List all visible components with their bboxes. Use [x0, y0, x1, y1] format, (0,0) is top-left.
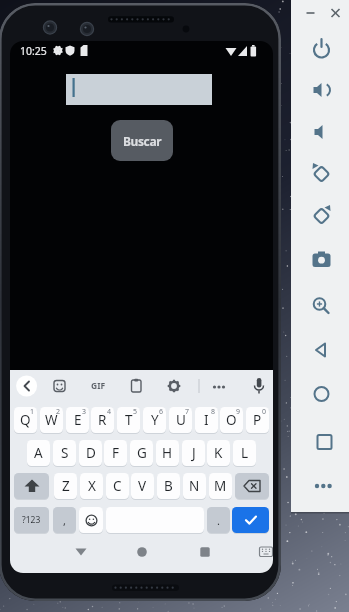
button[interactable]: , [53, 507, 76, 533]
button[interactable] [16, 375, 38, 397]
button[interactable] [310, 80, 333, 103]
button[interactable]: K [207, 440, 230, 466]
button[interactable]: B [157, 473, 180, 499]
button[interactable]: N [183, 473, 206, 499]
button[interactable] [232, 507, 269, 533]
staticText: X [88, 477, 96, 495]
button[interactable]: L [233, 440, 256, 466]
staticText: E [74, 411, 82, 429]
button[interactable]: ?123 [14, 507, 49, 533]
button[interactable]: R [91, 407, 114, 433]
button[interactable]: Y [143, 407, 166, 433]
staticText: 1 [30, 407, 35, 417]
staticText: L [241, 444, 249, 462]
button[interactable] [208, 375, 230, 397]
button[interactable]: I [195, 407, 218, 433]
button[interactable] [310, 124, 333, 147]
staticText: P [253, 411, 262, 429]
staticText: 5 [133, 407, 138, 417]
button[interactable] [310, 36, 333, 59]
button[interactable]: Q [14, 407, 37, 433]
button[interactable]: T [117, 407, 140, 433]
button[interactable]: F [104, 440, 127, 466]
button[interactable] [310, 343, 333, 366]
staticText: 3 [82, 407, 87, 417]
button[interactable]: X [80, 473, 103, 499]
button[interactable] [310, 430, 333, 453]
staticText: 6 [159, 407, 164, 417]
button[interactable] [310, 255, 333, 278]
staticText: C [113, 477, 122, 495]
staticText: A [34, 444, 43, 462]
staticText: . [217, 513, 220, 528]
button[interactable]: D [79, 440, 102, 466]
staticText: I [204, 411, 209, 429]
button[interactable] [310, 474, 333, 497]
button[interactable]: C [106, 473, 129, 499]
button[interactable]: A [27, 440, 50, 466]
staticText: 8 [211, 407, 216, 417]
button[interactable]: Z [54, 473, 77, 499]
button[interactable] [49, 375, 71, 397]
staticText: Z [62, 477, 70, 495]
staticText: 9 [236, 407, 241, 417]
button[interactable] [163, 375, 185, 397]
button[interactable]: E [66, 407, 89, 433]
staticText: K [214, 444, 223, 462]
button[interactable]: W [40, 407, 63, 433]
button[interactable]: H [156, 440, 179, 466]
button[interactable] [125, 375, 147, 397]
button[interactable]: M [209, 473, 232, 499]
button[interactable]: G [130, 440, 153, 466]
button[interactable]: S [53, 440, 76, 466]
staticText: G [137, 444, 147, 462]
staticText: H [162, 444, 173, 462]
staticText: V [138, 477, 147, 495]
staticText: 0 [262, 407, 267, 417]
staticText: J [192, 444, 196, 462]
button[interactable] [66, 74, 212, 105]
staticText: B [164, 477, 173, 495]
button[interactable] [131, 541, 153, 563]
button[interactable]: . [207, 507, 230, 533]
button[interactable] [327, 5, 349, 28]
staticText: F [112, 444, 120, 462]
staticText: M [214, 477, 227, 495]
button[interactable] [255, 541, 273, 563]
button[interactable] [310, 167, 333, 190]
button[interactable]: U [169, 407, 192, 433]
staticText: Y [151, 411, 159, 429]
staticText: ?123 [22, 514, 41, 526]
staticText: GIF [91, 380, 106, 392]
button[interactable] [70, 541, 92, 563]
button[interactable]: J [182, 440, 205, 466]
button[interactable]: O [220, 407, 243, 433]
button[interactable] [14, 473, 49, 499]
button[interactable] [79, 507, 103, 533]
staticText: 4 [107, 407, 112, 417]
button[interactable]: V [131, 473, 154, 499]
staticText: N [189, 477, 200, 495]
button[interactable]: P [246, 407, 269, 433]
staticText: U [176, 411, 186, 429]
button[interactable]: Buscar [111, 120, 173, 161]
staticText: W [45, 411, 58, 429]
staticText: T [125, 411, 133, 429]
staticText: 10:25 [20, 44, 47, 58]
staticText: Buscar [123, 133, 162, 149]
button[interactable] [310, 386, 333, 409]
button[interactable] [87, 375, 109, 397]
staticText: S [61, 444, 69, 462]
button[interactable] [310, 299, 333, 322]
staticText: Q [20, 411, 31, 429]
staticText: O [226, 411, 237, 429]
button[interactable] [194, 541, 216, 563]
staticText: R [98, 411, 107, 429]
staticText: D [86, 444, 96, 462]
button[interactable] [302, 5, 325, 28]
button[interactable] [310, 211, 333, 234]
button[interactable] [235, 473, 269, 499]
staticText: 2 [56, 407, 61, 417]
button[interactable] [248, 375, 270, 397]
